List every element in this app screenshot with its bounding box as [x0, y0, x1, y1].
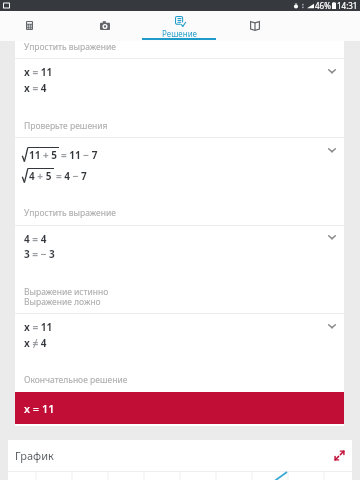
staticText: Выражение ложно — [24, 296, 101, 308]
staticText: 3 = − 3 — [24, 247, 55, 261]
staticText: x = 4 — [24, 81, 47, 95]
staticText: 11 + 5 — [29, 148, 58, 162]
button[interactable] — [15, 138, 344, 213]
button[interactable]: Calculator — [0, 11, 67, 41]
button[interactable] — [15, 226, 344, 304]
button[interactable] — [15, 59, 344, 126]
staticText: Упростить выражение — [24, 41, 116, 53]
button[interactable]: Camera — [67, 11, 142, 41]
button[interactable]: Book — [217, 11, 292, 41]
staticText: = 4 − 7 — [56, 169, 87, 183]
staticText: 4 = 4 — [24, 232, 47, 246]
staticText: 4 + 5 — [29, 169, 52, 183]
button[interactable]: Expand graph — [334, 450, 345, 461]
button[interactable]: График — [8, 440, 352, 471]
staticText: График — [15, 448, 54, 463]
staticText: = 11 − 7 — [61, 148, 98, 162]
staticText: Решение — [162, 28, 198, 39]
button[interactable]: x = 11 — [15, 392, 344, 424]
button[interactable] — [15, 314, 344, 376]
staticText: x ≠ 4 — [24, 336, 47, 350]
staticText: Окончательное решение — [24, 374, 128, 386]
button[interactable]: Решение — [142, 11, 217, 41]
staticText: x = 11 — [24, 320, 53, 334]
staticText: x = 11 — [24, 65, 53, 79]
staticText: 46% — [315, 0, 331, 11]
staticText: Выражение истинно — [24, 286, 109, 298]
staticText: 14:31 — [337, 0, 358, 11]
staticText: Проверьте решения — [24, 120, 108, 132]
staticText: Упростить выражение — [24, 207, 116, 219]
staticText: x = 11 — [24, 401, 55, 416]
